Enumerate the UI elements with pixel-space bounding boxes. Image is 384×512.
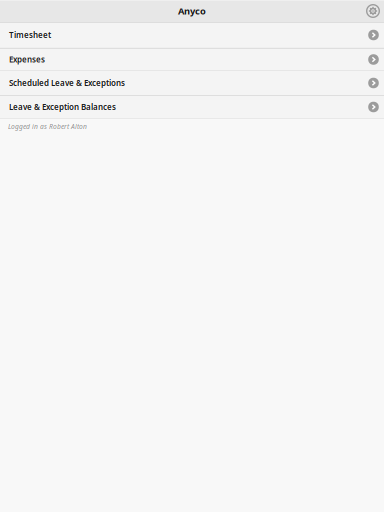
staticText: Expenses [9,54,45,65]
button[interactable]: Expenses [0,49,384,71]
button[interactable]: Settings [365,3,380,18]
button[interactable]: Scheduled Leave & Exceptions [0,71,384,96]
staticText: Leave & Exception Balances [9,102,116,112]
staticText: Logged in as Robert Alton [8,122,87,131]
staticText: Anyco [178,5,206,17]
staticText: Scheduled Leave & Exceptions [9,78,125,88]
staticText: Timesheet [9,30,51,40]
button[interactable]: Leave & Exception Balances [0,96,384,119]
button[interactable]: Timesheet [0,23,384,49]
